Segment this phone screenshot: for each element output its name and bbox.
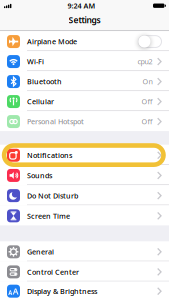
staticText: Wi-Fi — [27, 57, 44, 66]
staticText: Sounds — [27, 171, 52, 180]
staticText: Screen Time — [27, 211, 70, 221]
staticText: cpu2 — [137, 57, 152, 66]
button[interactable]: Notifications — [0, 145, 169, 165]
staticText: On — [142, 77, 152, 86]
staticText: A — [8, 289, 12, 297]
staticText: Cellular — [27, 97, 54, 106]
staticText: Bluetooth — [27, 77, 62, 86]
button[interactable]: Cellular — [0, 91, 169, 111]
button[interactable]: Control Center — [0, 261, 169, 281]
button[interactable]: A — [0, 281, 169, 300]
staticText: Off — [141, 117, 152, 126]
staticText: Personal Hotspot — [27, 117, 84, 126]
staticText: Settings — [68, 14, 100, 26]
button[interactable]: General — [0, 241, 169, 261]
staticText: Display & Brightness — [27, 286, 97, 296]
button[interactable]: Do Not Disturb — [0, 185, 169, 205]
staticText: Off — [141, 97, 152, 106]
staticText: Airplane Mode — [27, 37, 77, 46]
staticText: Do Not Disturb — [27, 191, 78, 200]
button[interactable]: Airplane Mode — [138, 35, 162, 48]
button[interactable]: Personal Hotspot — [0, 111, 169, 131]
staticText: A — [13, 285, 19, 297]
button[interactable]: Sounds — [0, 165, 169, 185]
button[interactable]: Bluetooth — [0, 71, 169, 91]
staticText: Control Center — [27, 267, 79, 277]
staticText: Notifications — [27, 150, 72, 160]
button[interactable]: Screen Time — [0, 205, 169, 225]
staticText: General — [27, 247, 54, 257]
staticText: 9:24 AM — [68, 1, 96, 11]
button[interactable]: Wi-Fi — [0, 51, 169, 71]
